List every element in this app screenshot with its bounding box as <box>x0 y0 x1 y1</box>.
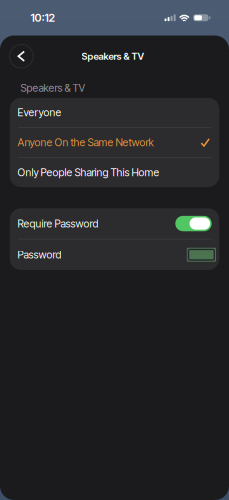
staticText: Require Password <box>17 217 98 230</box>
staticText: 10:12 <box>31 11 55 24</box>
staticText: Speakers & TV <box>20 81 85 94</box>
button[interactable]: Back <box>8 43 35 70</box>
button[interactable]: Require Password <box>10 208 219 239</box>
button[interactable]: Only People Sharing This Home <box>10 158 219 187</box>
staticText: Password <box>17 248 61 261</box>
button[interactable]: Anyone On the Same Network <box>10 128 219 157</box>
button[interactable]: Password <box>10 239 219 270</box>
staticText: Only People Sharing This Home <box>17 166 159 179</box>
staticText: Everyone <box>17 106 61 119</box>
staticText: Speakers & TV <box>81 50 144 62</box>
button[interactable]: Everyone <box>10 98 219 127</box>
staticText: Anyone On the Same Network <box>17 136 153 149</box>
